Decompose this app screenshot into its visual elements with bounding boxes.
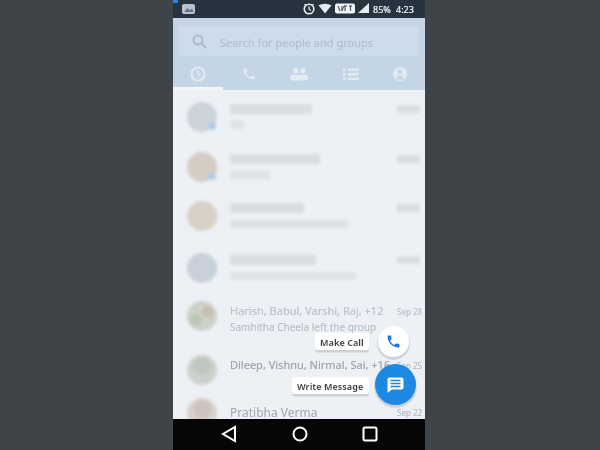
staticText: Search for people and groups (220, 35, 373, 50)
button[interactable]: Search for people and groups (179, 26, 419, 56)
staticText: 85% (373, 3, 391, 15)
button[interactable] (378, 326, 409, 357)
button[interactable] (274, 58, 324, 90)
button[interactable] (324, 58, 374, 90)
button[interactable] (375, 58, 425, 90)
staticText: 4:23 (396, 3, 414, 15)
staticText: Samhitha Cheela left the group (230, 320, 377, 334)
button[interactable] (223, 58, 273, 90)
staticText: Dileep, Vishnu, Nirmal, Sai, +16 (230, 357, 391, 372)
staticText: Make Call (320, 336, 364, 348)
staticText: Pratibha Verma (230, 404, 318, 420)
staticText: Harish, Babul, Varshi, Raj, +12 (230, 303, 384, 318)
staticText: Sep 22 (397, 407, 423, 418)
staticText: Sep 28 (397, 306, 423, 317)
button[interactable] (375, 364, 416, 405)
button[interactable]: Write Message (292, 377, 369, 394)
button[interactable] (173, 58, 223, 90)
staticText: Write Message (297, 380, 364, 392)
button[interactable] (350, 424, 390, 446)
button[interactable]: Make Call (315, 333, 369, 350)
button[interactable] (213, 424, 253, 446)
button[interactable] (280, 424, 320, 446)
staticText: Sep 25 (397, 360, 423, 371)
